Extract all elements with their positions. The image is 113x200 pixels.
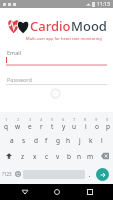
button[interactable]: 1: [0, 116, 12, 132]
button[interactable]: 2: [12, 116, 24, 132]
staticText: z: [21, 152, 25, 161]
button[interactable]: Back: [16, 184, 33, 200]
button[interactable]: l: [96, 132, 107, 148]
button[interactable]: c: [41, 148, 52, 164]
staticText: t: [51, 122, 54, 131]
button[interactable]: f: [41, 132, 52, 148]
staticText: ?123: [2, 171, 12, 177]
staticText: 1: [5, 117, 8, 122]
staticText: h: [66, 136, 71, 145]
button[interactable]: 4: [36, 116, 47, 132]
staticText: Password: [7, 76, 32, 83]
staticText: 0: [106, 117, 109, 122]
button[interactable]: b: [63, 148, 74, 164]
staticText: 3: [29, 117, 32, 122]
button[interactable]: k: [85, 132, 96, 148]
staticText: o: [95, 122, 99, 131]
button[interactable]: Emoji: [13, 164, 23, 184]
staticText: 7: [73, 117, 76, 122]
staticText: Email: [7, 49, 22, 56]
staticText: 5: [51, 117, 54, 122]
staticText: d: [34, 136, 38, 145]
button[interactable]: Home: [48, 184, 65, 200]
staticText: c: [45, 152, 49, 161]
staticText: a: [10, 136, 14, 145]
staticText: e: [28, 122, 32, 131]
staticText: p: [106, 122, 110, 131]
staticText: m: [87, 152, 94, 161]
button[interactable]: Shift: [0, 148, 17, 164]
staticText: u: [72, 122, 77, 131]
button[interactable]: s: [18, 132, 30, 148]
staticText: 6: [62, 117, 65, 122]
button[interactable]: 3: [24, 116, 36, 132]
staticText: q: [4, 122, 8, 131]
button[interactable]: h: [63, 132, 74, 148]
staticText: Multi-user app for heart rate monitoring: [26, 36, 113, 41]
staticText: i: [85, 122, 87, 131]
staticText: l: [101, 136, 103, 145]
staticText: 2: [17, 117, 20, 122]
staticText: s: [22, 136, 26, 145]
button[interactable]: Recents: [81, 184, 98, 200]
staticText: j: [79, 136, 81, 145]
staticText: 4: [40, 117, 43, 122]
button[interactable]: 5: [47, 116, 58, 132]
staticText: v: [56, 152, 60, 161]
button[interactable]: ?123: [0, 164, 14, 184]
staticText: w: [15, 122, 21, 131]
button[interactable]: z: [17, 148, 29, 164]
button[interactable]: 0: [102, 116, 113, 132]
button[interactable]: Backspace: [96, 148, 113, 164]
button[interactable]: x: [29, 148, 41, 164]
staticText: n: [77, 152, 82, 161]
staticText: Cardio: [30, 17, 71, 35]
button[interactable]: d: [30, 132, 41, 148]
staticText: 9: [95, 117, 98, 122]
button[interactable]: Go: [96, 168, 109, 181]
staticText: Mood: [71, 17, 107, 35]
staticText: 11:13: [97, 1, 110, 8]
button[interactable]: Loading: [49, 87, 62, 100]
button[interactable]: Email field: [0, 46, 113, 64]
button[interactable]: Period: [85, 164, 94, 184]
button[interactable]: g: [52, 132, 63, 148]
staticText: y: [62, 122, 66, 131]
button[interactable]: 9: [91, 116, 102, 132]
button[interactable]: j: [74, 132, 85, 148]
button[interactable]: 7: [69, 116, 80, 132]
button[interactable]: 6: [58, 116, 69, 132]
staticText: f: [45, 136, 48, 145]
staticText: x: [33, 152, 37, 161]
button[interactable]: m: [85, 148, 96, 164]
button[interactable]: n: [74, 148, 85, 164]
button[interactable]: a: [6, 132, 18, 148]
staticText: r: [40, 122, 43, 131]
button[interactable]: 8: [80, 116, 91, 132]
staticText: g: [56, 136, 60, 145]
staticText: 8: [84, 117, 87, 122]
button[interactable]: Password field: [0, 74, 113, 86]
button[interactable]: v: [52, 148, 63, 164]
staticText: k: [89, 136, 93, 145]
staticText: b: [67, 152, 71, 161]
